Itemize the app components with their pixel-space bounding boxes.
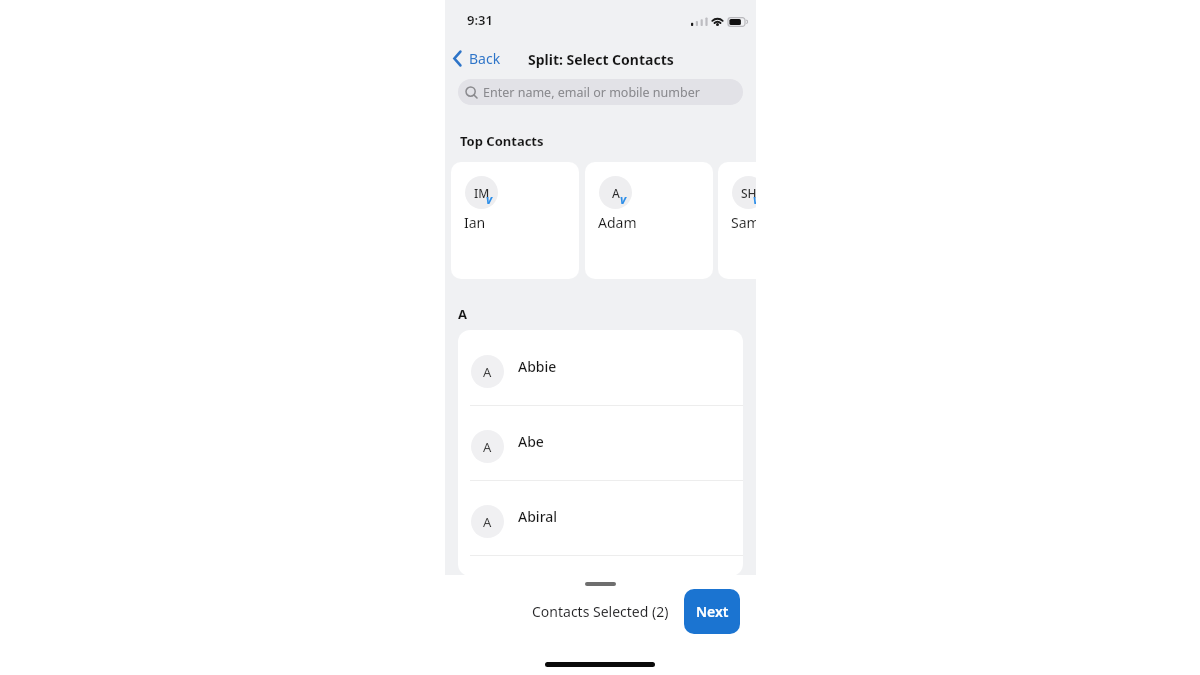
button[interactable]: A — [458, 347, 743, 422]
staticText: A — [483, 438, 492, 456]
button[interactable]: IM — [451, 162, 579, 279]
staticText: Back — [469, 49, 501, 68]
button[interactable]: A — [458, 422, 743, 497]
staticText: SH — [741, 185, 756, 201]
staticText: v — [620, 191, 627, 207]
button[interactable]: A — [458, 497, 743, 572]
staticText: A — [483, 513, 492, 531]
staticText: 9:31 — [467, 11, 493, 29]
staticText: Abe — [518, 432, 544, 451]
staticText: Enter name, email or mobile number — [483, 84, 700, 101]
staticText: A — [483, 363, 492, 381]
staticText: Next — [696, 602, 729, 621]
staticText: A — [458, 305, 467, 323]
button[interactable]: Next — [684, 589, 740, 634]
staticText: Abbie — [518, 357, 557, 376]
button[interactable]: Enter name, email or mobile number — [458, 79, 743, 105]
staticText: Adam — [598, 213, 637, 232]
staticText: IM — [474, 185, 490, 201]
staticText: Split: Select Contacts — [528, 50, 674, 69]
button[interactable]: A — [585, 162, 713, 279]
staticText: v — [753, 191, 756, 207]
staticText: Top Contacts — [460, 132, 544, 150]
staticText: A — [612, 185, 620, 201]
staticText: Contacts Selected (2) — [532, 602, 669, 621]
staticText: Sam — [731, 213, 756, 232]
staticText: v — [486, 191, 493, 207]
staticText: Ian — [464, 213, 486, 232]
button[interactable]: Back — [452, 49, 501, 68]
staticText: Abiral — [518, 507, 558, 526]
button[interactable]: SH — [718, 162, 756, 279]
